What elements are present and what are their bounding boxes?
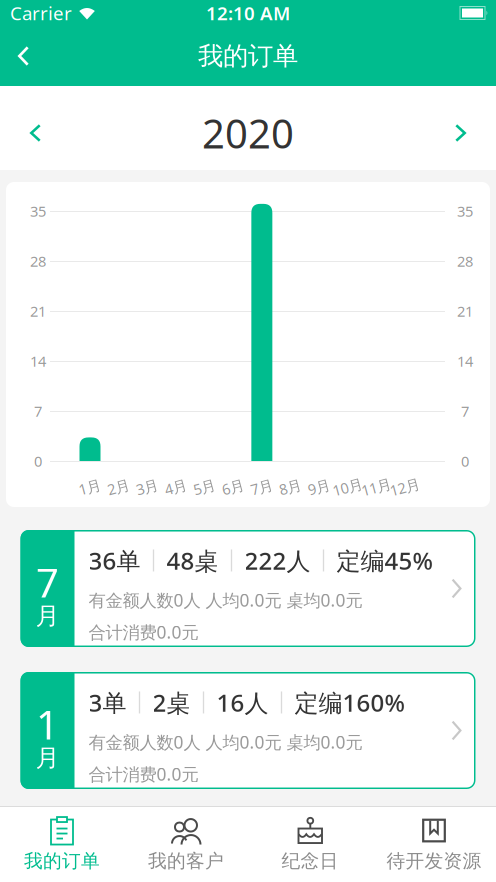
button[interactable]: 我的订单	[0, 806, 124, 882]
staticText: 5月	[193, 477, 216, 497]
staticText: 月	[35, 601, 59, 631]
staticText: 定编45%	[336, 544, 432, 576]
staticText: 我的订单	[24, 849, 100, 872]
staticText: 21	[30, 301, 46, 321]
staticText: 3单	[88, 686, 126, 718]
staticText: 36单	[88, 544, 140, 576]
button[interactable]: 纪念日	[248, 806, 372, 882]
staticText: 3月	[136, 477, 159, 497]
staticText: 7	[36, 555, 59, 608]
staticText: 纪念日	[281, 849, 338, 872]
staticText: 48桌	[166, 544, 218, 576]
staticText: 2020	[202, 106, 294, 159]
button[interactable]: 7	[20, 530, 475, 647]
staticText: 定编160%	[294, 686, 404, 718]
staticText: Carrier	[10, 1, 72, 25]
staticText: 9月	[308, 477, 331, 497]
button[interactable]: 1	[20, 672, 475, 789]
staticText: 10月	[332, 477, 363, 497]
staticText: 11月	[361, 477, 392, 497]
staticText: 2桌	[152, 686, 190, 718]
staticText: 2月	[107, 477, 130, 497]
button[interactable]: 我的客户	[124, 806, 248, 882]
staticText: 21	[457, 301, 473, 321]
staticText: 月	[35, 743, 59, 773]
staticText: 有金额人数0人 人均0.0元 桌均0.0元	[88, 730, 362, 753]
staticText: 28	[30, 251, 46, 271]
staticText: 12:10 AM	[206, 1, 290, 25]
button[interactable]	[0, 112, 41, 154]
staticText: 合计消费0.0元	[88, 762, 198, 785]
staticText: 0	[461, 451, 469, 471]
staticText: 12月	[389, 477, 420, 497]
staticText: 4月	[164, 477, 187, 497]
staticText: 7月	[250, 477, 273, 497]
staticText: 我的客户	[148, 849, 224, 872]
staticText: 7	[461, 401, 469, 421]
staticText: 合计消费0.0元	[88, 620, 198, 643]
staticText: 0	[34, 451, 42, 471]
staticText: 1	[36, 697, 59, 750]
staticText: 8月	[279, 477, 302, 497]
staticText: 我的订单	[198, 40, 298, 71]
staticText: 1月	[78, 477, 101, 497]
staticText: 222人	[244, 544, 310, 576]
button[interactable]	[0, 36, 29, 76]
staticText: 35	[457, 201, 473, 221]
staticText: 6月	[222, 477, 245, 497]
staticText: 28	[457, 251, 473, 271]
staticText: 14	[30, 351, 46, 371]
staticText: 35	[30, 201, 46, 221]
staticText: 待开发资源	[386, 849, 481, 872]
staticText: 有金额人数0人 人均0.0元 桌均0.0元	[88, 588, 362, 611]
staticText: 16人	[216, 686, 268, 718]
button[interactable]	[455, 112, 496, 154]
staticText: 7	[34, 401, 42, 421]
staticText: 14	[457, 351, 473, 371]
button[interactable]: 待开发资源	[372, 806, 496, 882]
